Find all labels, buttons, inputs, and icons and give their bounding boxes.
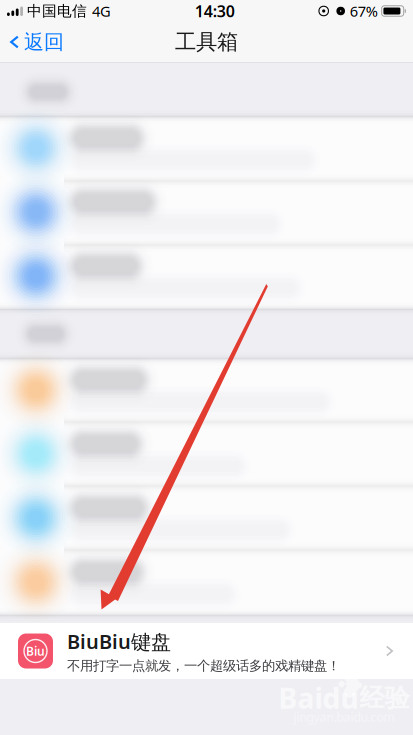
staticText: 工具箱	[175, 29, 238, 55]
button[interactable]	[0, 486, 413, 550]
staticText: 返回	[24, 30, 64, 54]
staticText: Biu	[26, 643, 45, 659]
staticText: 不用打字一点就发，一个超级话多的戏精键盘！	[67, 658, 340, 674]
button[interactable]: 返回	[0, 22, 64, 62]
button[interactable]	[0, 550, 413, 614]
staticText: 经验	[359, 682, 409, 713]
button[interactable]	[0, 358, 413, 422]
button[interactable]	[0, 116, 413, 180]
staticText: 67%	[350, 1, 378, 21]
button[interactable]: Biu	[0, 623, 413, 679]
staticText: Baidu	[278, 679, 358, 717]
staticText: BiuBiu键盘	[67, 628, 171, 655]
button[interactable]	[0, 422, 413, 486]
staticText: 4G	[92, 1, 111, 21]
staticText: 中国电信	[27, 2, 87, 20]
button[interactable]	[0, 180, 413, 244]
button[interactable]	[0, 244, 413, 308]
staticText: 14:30	[195, 0, 235, 22]
